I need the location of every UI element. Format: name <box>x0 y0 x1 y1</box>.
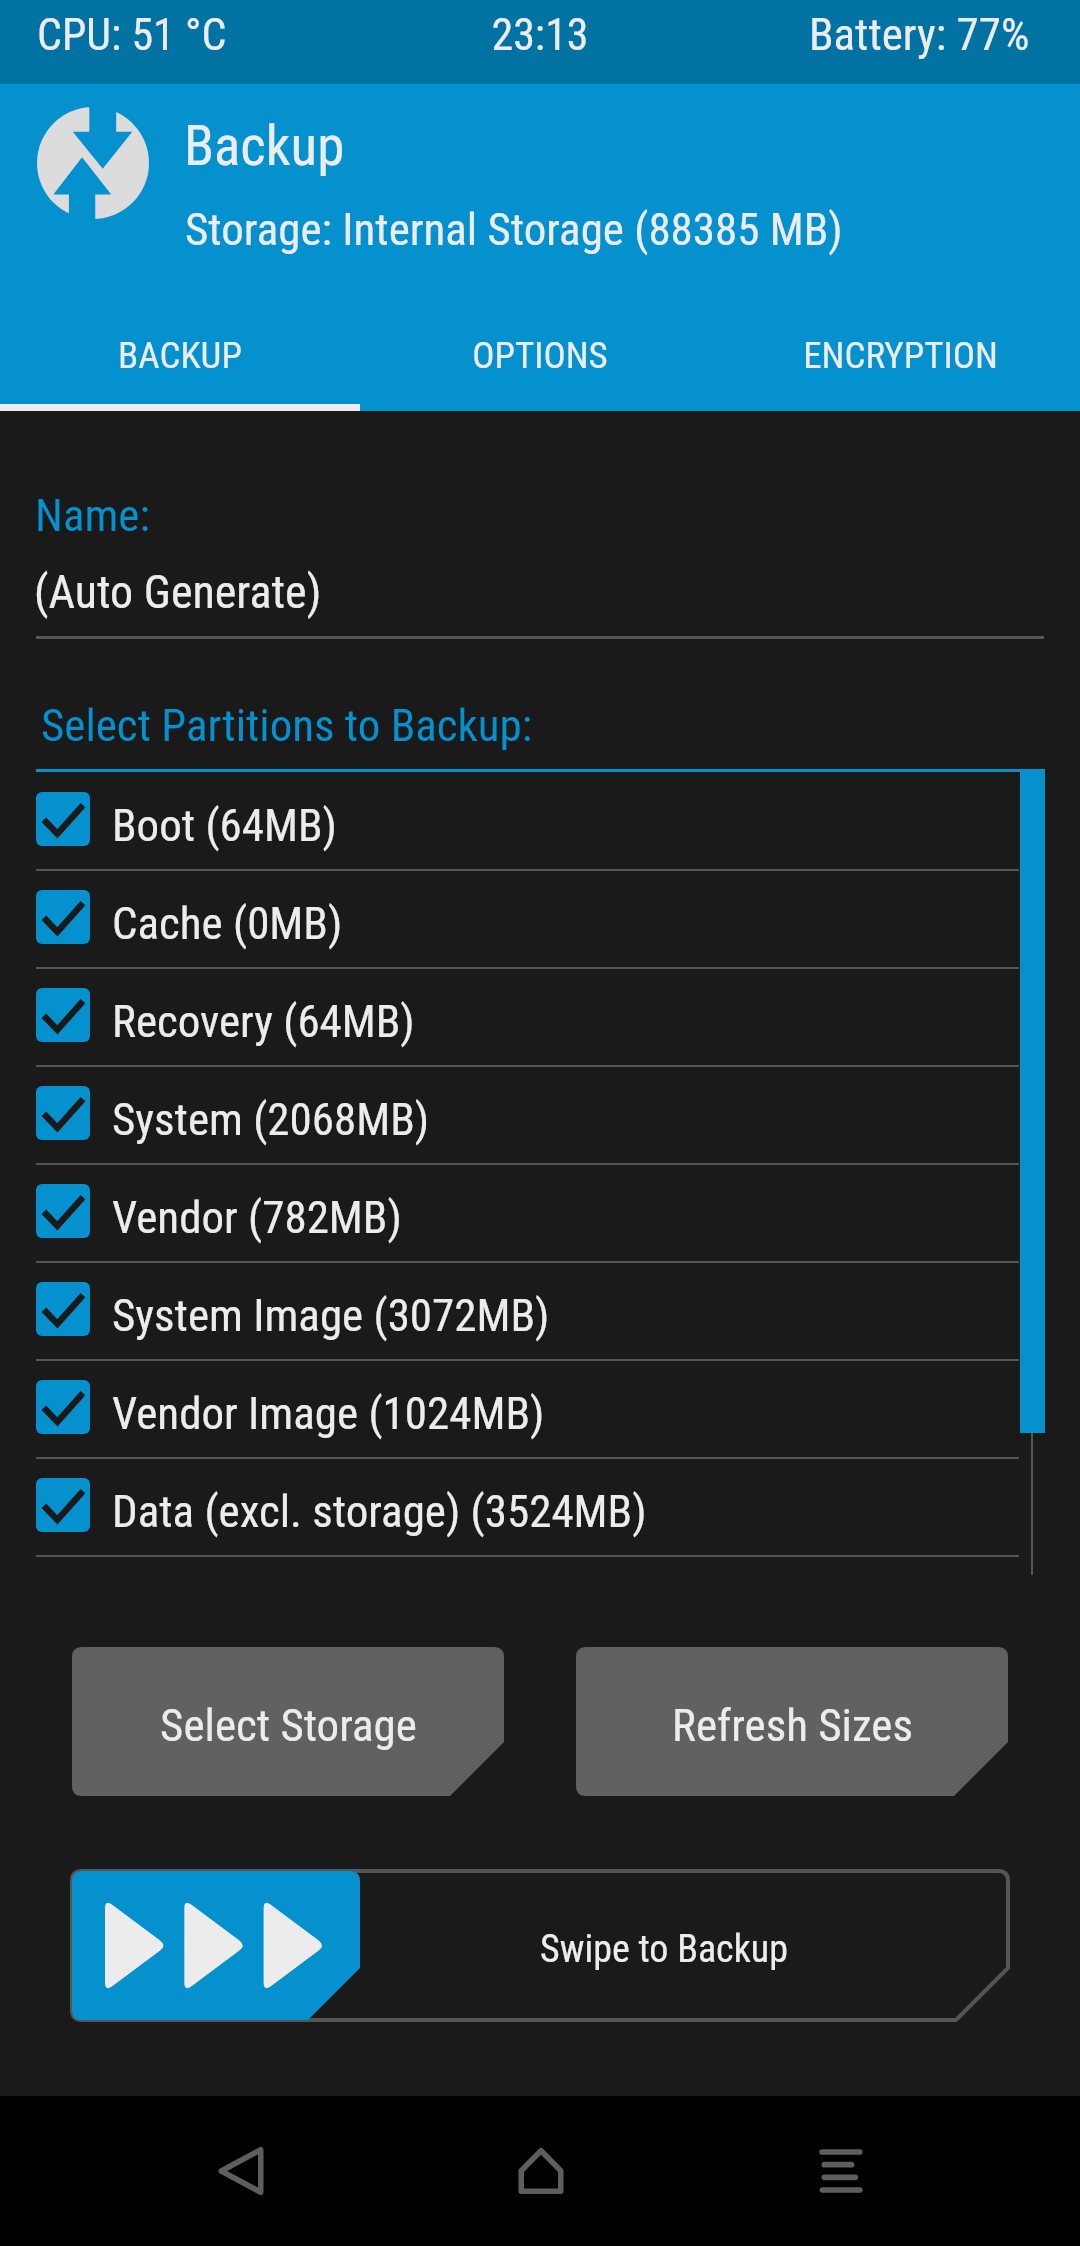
button[interactable] <box>72 1871 360 2020</box>
button[interactable]: Recent apps <box>691 2096 991 2246</box>
button[interactable]: Vendor Image (1024MB) <box>0 1361 1080 1459</box>
button[interactable]: Back <box>91 2096 391 2246</box>
staticText: Select Storage <box>160 1699 417 1752</box>
button[interactable]: OPTIONS <box>360 301 720 411</box>
staticText: Cache (0MB) <box>112 897 343 950</box>
staticText: OPTIONS <box>472 334 608 377</box>
staticText: Swipe to Backup <box>540 1927 788 1972</box>
button[interactable]: Home <box>391 2096 691 2246</box>
button[interactable]: Data (excl. storage) (3524MB) <box>0 1459 1080 1557</box>
button[interactable]: Cache (0MB) <box>0 871 1080 969</box>
staticText: System (2068MB) <box>112 1093 430 1146</box>
staticText: Battery: 77% <box>809 8 1030 61</box>
button[interactable]: Boot (64MB) <box>0 773 1080 871</box>
staticText: BACKUP <box>118 334 242 377</box>
staticText: System Image (3072MB) <box>112 1289 550 1342</box>
staticText: Vendor Image (1024MB) <box>112 1387 545 1440</box>
staticText: (Auto Generate) <box>34 565 322 619</box>
button[interactable]: BACKUP <box>0 301 360 411</box>
button[interactable]: System Image (3072MB) <box>0 1263 1080 1361</box>
staticText: Backup <box>184 114 345 178</box>
staticText: 23:13 <box>0 9 1080 61</box>
staticText: Refresh Sizes <box>672 1699 913 1752</box>
button[interactable]: Vendor (782MB) <box>0 1165 1080 1263</box>
button[interactable]: Recovery (64MB) <box>0 969 1080 1067</box>
staticText: Boot (64MB) <box>112 799 337 852</box>
button[interactable]: Select Storage <box>72 1647 504 1796</box>
staticText: Data (excl. storage) (3524MB) <box>112 1485 647 1538</box>
staticText: CPU: 51 °C <box>37 9 227 61</box>
staticText: Vendor (782MB) <box>112 1191 402 1244</box>
staticText: Recovery (64MB) <box>112 995 415 1048</box>
button[interactable]: ENCRYPTION <box>720 301 1080 411</box>
button[interactable]: System (2068MB) <box>0 1067 1080 1165</box>
staticText: ENCRYPTION <box>803 334 998 377</box>
staticText: Storage: Internal Storage (88385 MB) <box>185 203 843 256</box>
staticText: Select Partitions to Backup: <box>41 699 533 752</box>
staticText: Name: <box>35 489 150 542</box>
button[interactable]: Refresh Sizes <box>576 1647 1008 1796</box>
